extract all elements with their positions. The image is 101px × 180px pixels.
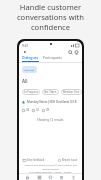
staticText: Give feedback (27, 158, 45, 162)
staticText: All (22, 78, 28, 84)
button[interactable]: Dashboard (37, 175, 42, 180)
button[interactable]: Home (25, 175, 30, 180)
staticText: Dialogues (22, 55, 39, 60)
staticText: Participants (43, 55, 62, 60)
staticText: Report issue (62, 158, 78, 162)
staticText: Member First (63, 90, 80, 94)
staticText: Platform and Service Training © 2023 Pla… (21, 164, 80, 173)
button[interactable]: Monday Notes JSDH Decklevel UX 8 (19, 100, 82, 104)
staticText: In Progress (24, 90, 38, 94)
button[interactable]: Dialogues (22, 55, 39, 62)
staticText: Not Taken (44, 90, 57, 94)
button[interactable]: In Progress (22, 89, 40, 95)
button[interactable]: Back (22, 49, 28, 55)
staticText: 02 (36, 108, 40, 112)
staticText: 9:41 (22, 44, 29, 48)
button[interactable]: Member First (61, 89, 82, 95)
button[interactable]: Tasks (59, 175, 64, 180)
staticText: Handle customer conversations with confi… (0, 2, 101, 32)
button[interactable]: Report issue (58, 158, 78, 162)
button[interactable]: Profile (71, 175, 76, 180)
button[interactable]: Give feedback (23, 158, 45, 162)
button[interactable]: Add New (22, 66, 37, 73)
button[interactable]: Not Taken (42, 89, 59, 95)
button[interactable]: Participants (43, 55, 62, 60)
staticText: Monday Notes JSDH Decklevel UX 8 (27, 100, 77, 104)
staticText: Showing 12 results (37, 118, 64, 122)
button[interactable]: Notifications (73, 49, 79, 55)
staticText: Add New (24, 68, 35, 71)
button[interactable]: Messages (48, 175, 53, 180)
button[interactable]: Search (67, 49, 73, 55)
staticText: 04 (26, 108, 30, 112)
staticText: 08 (46, 108, 50, 112)
